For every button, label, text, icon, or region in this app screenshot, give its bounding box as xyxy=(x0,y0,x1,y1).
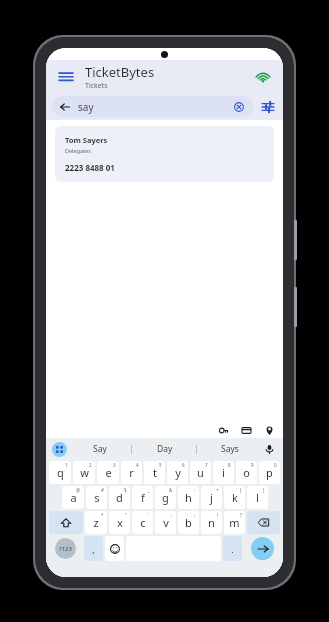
button[interactable]: d xyxy=(109,486,130,509)
staticText: Day xyxy=(157,443,173,455)
button[interactable]: Filter xyxy=(259,98,277,116)
button[interactable]: Passwords xyxy=(217,424,229,436)
button[interactable]: Clear search xyxy=(232,100,246,114)
button[interactable] xyxy=(105,536,124,561)
staticText: x xyxy=(117,515,123,530)
button[interactable]: e xyxy=(97,461,119,484)
staticText: h xyxy=(185,490,192,505)
button[interactable]: Addresses xyxy=(263,424,275,436)
staticText: ) xyxy=(263,487,265,493)
button[interactable]: ?123 xyxy=(55,538,76,559)
button[interactable]: h xyxy=(178,486,199,509)
staticText: Tickets xyxy=(85,81,108,91)
staticText: * xyxy=(101,512,104,518)
staticText: 2 xyxy=(89,462,92,468)
staticText: - xyxy=(194,487,196,493)
button[interactable] xyxy=(49,511,83,534)
button[interactable]: a xyxy=(62,486,84,509)
staticText: 6 xyxy=(182,462,185,468)
staticText: . xyxy=(231,543,234,555)
staticText: 8 xyxy=(228,462,231,468)
staticText: ?123 xyxy=(59,545,72,553)
button[interactable]: u xyxy=(190,461,211,484)
staticText: r xyxy=(129,465,134,480)
button[interactable]: Day xyxy=(132,438,197,460)
button[interactable]: w xyxy=(73,461,95,484)
staticText: 5 xyxy=(159,462,162,468)
button[interactable]: Back xyxy=(52,96,253,117)
button[interactable]: Say xyxy=(67,438,132,460)
button[interactable]: c xyxy=(132,511,153,534)
staticText: + xyxy=(216,487,219,493)
staticText: e xyxy=(105,465,112,480)
button[interactable]: Keyboard toolbar xyxy=(52,442,67,457)
button[interactable]: o xyxy=(236,461,257,484)
staticText: k xyxy=(232,490,238,505)
staticText: Tom Sayers xyxy=(65,135,108,145)
button[interactable]: l xyxy=(247,486,268,509)
staticText: TicketBytes xyxy=(85,63,155,81)
button[interactable]: j xyxy=(201,486,222,509)
button[interactable]: Tom Sayers xyxy=(55,126,274,182)
staticText: Delegates xyxy=(65,147,91,154)
button[interactable]: g xyxy=(155,486,176,509)
staticText: 4 xyxy=(136,462,139,468)
button[interactable]: Says xyxy=(197,438,262,460)
staticText: , xyxy=(92,543,95,555)
staticText: $ xyxy=(124,487,127,493)
staticText: 9 xyxy=(251,462,254,468)
staticText: n xyxy=(208,515,215,530)
button[interactable]: i xyxy=(213,461,234,484)
other: Back xyxy=(58,100,72,114)
staticText: o xyxy=(243,465,250,480)
button[interactable]: Payment methods xyxy=(240,424,252,436)
staticText: @ xyxy=(76,487,81,493)
button[interactable]: x xyxy=(109,511,130,534)
staticText: 1 xyxy=(65,462,68,468)
button[interactable]: Open navigation menu xyxy=(56,67,76,87)
staticText: " xyxy=(125,512,127,518)
button[interactable]: r xyxy=(121,461,142,484)
staticText: say xyxy=(78,100,94,114)
button[interactable]: v xyxy=(155,511,176,534)
button[interactable]: z xyxy=(85,511,107,534)
staticText: m xyxy=(229,515,240,530)
button[interactable] xyxy=(247,511,280,534)
staticText: d xyxy=(116,490,123,505)
staticText: l xyxy=(256,490,259,505)
staticText: & xyxy=(169,487,173,493)
staticText: z xyxy=(93,515,99,530)
staticText: p xyxy=(266,465,273,480)
staticText: c xyxy=(140,515,146,530)
button[interactable]: q xyxy=(49,461,71,484)
staticText: 2223 8488 01 xyxy=(65,162,115,173)
staticText: u xyxy=(197,465,204,480)
button[interactable]: s xyxy=(86,486,107,509)
staticText: Say xyxy=(93,443,107,455)
button[interactable]: f xyxy=(132,486,153,509)
button[interactable]: b xyxy=(178,511,199,534)
staticText: 0 xyxy=(274,462,277,468)
button[interactable]: t xyxy=(144,461,165,484)
button[interactable]: k xyxy=(224,486,245,509)
staticText: w xyxy=(80,465,89,480)
staticText: : xyxy=(171,512,173,518)
staticText: f xyxy=(141,490,145,505)
button[interactable]: m xyxy=(224,511,245,534)
button[interactable]: Wi-Fi connected xyxy=(253,67,273,87)
staticText: ! xyxy=(217,512,219,518)
button[interactable]: Voice input xyxy=(262,442,276,456)
button[interactable]: p xyxy=(259,461,280,484)
button[interactable]: . xyxy=(223,536,242,561)
staticText: j xyxy=(210,490,213,505)
staticText: g xyxy=(162,490,169,505)
staticText: t xyxy=(153,465,157,480)
button[interactable]: , xyxy=(84,536,103,561)
button[interactable]: Enter xyxy=(251,537,274,560)
button[interactable]: n xyxy=(201,511,222,534)
staticText: ( xyxy=(240,487,242,493)
button[interactable]: y xyxy=(167,461,188,484)
staticText: s xyxy=(94,490,100,505)
staticText: Says xyxy=(221,443,239,455)
